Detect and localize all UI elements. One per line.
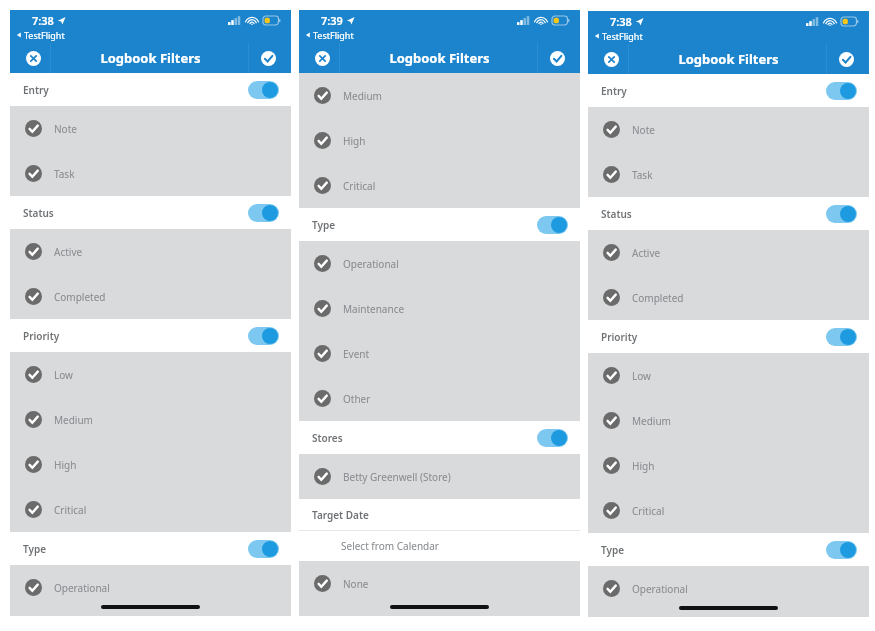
button[interactable]: Entry	[10, 73, 291, 106]
button[interactable]: Type	[299, 208, 580, 241]
button[interactable]: Apply filters	[544, 45, 570, 71]
staticText: TestFlight	[313, 29, 354, 41]
staticText: Operational	[343, 257, 399, 271]
button[interactable]: High	[588, 443, 869, 488]
button[interactable]: Note	[588, 107, 869, 152]
button[interactable]: Toggle section	[826, 82, 857, 100]
staticText: None	[343, 577, 369, 591]
button[interactable]: Toggle section	[537, 429, 568, 447]
staticText: Note	[632, 123, 655, 137]
button[interactable]: Toggle section	[248, 540, 279, 558]
staticText: Medium	[343, 89, 382, 103]
button[interactable]: Event	[299, 331, 580, 376]
staticText: Operational	[54, 581, 110, 595]
staticText: Medium	[632, 414, 671, 428]
button[interactable]: Medium	[588, 398, 869, 443]
button[interactable]: Operational	[299, 241, 580, 286]
button[interactable]: Active	[588, 230, 869, 275]
staticText: Completed	[632, 291, 684, 305]
staticText: Other	[343, 392, 371, 406]
button[interactable]: Maintenance	[299, 286, 580, 331]
staticText: Critical	[343, 179, 376, 193]
button[interactable]: Completed	[588, 275, 869, 320]
staticText: Task	[632, 168, 653, 182]
staticText: Logbook Filters	[100, 49, 201, 67]
staticText: Type	[601, 543, 625, 557]
staticText: Maintenance	[343, 302, 405, 316]
staticText: Type	[23, 542, 47, 556]
button[interactable]: Toggle section	[248, 327, 279, 345]
button[interactable]: Medium	[299, 73, 580, 118]
staticText: Medium	[54, 413, 93, 427]
staticText: Status	[23, 206, 54, 220]
button[interactable]: Toggle section	[826, 541, 857, 559]
button[interactable]: Other	[299, 376, 580, 421]
staticText: Entry	[601, 84, 627, 98]
button[interactable]: Apply filters	[833, 46, 859, 72]
button[interactable]: Toggle section	[248, 81, 279, 99]
staticText: Low	[632, 369, 651, 383]
button[interactable]: Type	[588, 533, 869, 566]
button[interactable]: Operational	[10, 565, 291, 610]
staticText: TestFlight	[602, 30, 643, 42]
staticText: Logbook Filters	[678, 50, 779, 68]
button[interactable]: Close	[598, 46, 624, 72]
staticText: Priority	[601, 330, 638, 344]
button[interactable]: Completed	[10, 274, 291, 319]
button[interactable]: Active	[10, 229, 291, 274]
button[interactable]: Close	[309, 45, 335, 71]
staticText: High	[54, 458, 77, 472]
staticText: Logbook Filters	[389, 49, 490, 67]
staticText: Type	[312, 218, 336, 232]
button[interactable]: Close	[20, 45, 46, 71]
button[interactable]: Task	[588, 152, 869, 197]
staticText: Task	[54, 167, 75, 181]
staticText: Betty Greenwell (Store)	[343, 470, 451, 484]
staticText: 7:38	[32, 13, 54, 28]
staticText: Operational	[632, 582, 688, 596]
button[interactable]: Stores	[299, 421, 580, 454]
button[interactable]: Critical	[588, 488, 869, 533]
button[interactable]: Entry	[588, 74, 869, 107]
button[interactable]: None	[299, 561, 580, 606]
button[interactable]: Betty Greenwell (Store)	[299, 454, 580, 499]
button[interactable]: Medium	[10, 397, 291, 442]
staticText: Critical	[54, 503, 87, 517]
staticText: High	[343, 134, 366, 148]
staticText: Target Date	[312, 508, 369, 522]
button[interactable]: Target Date	[299, 499, 580, 530]
button[interactable]: Low	[10, 352, 291, 397]
button[interactable]: Task	[10, 151, 291, 196]
button[interactable]: Status	[588, 197, 869, 230]
staticText: Select from Calendar	[341, 539, 439, 553]
button[interactable]: Note	[10, 106, 291, 151]
button[interactable]: Type	[10, 532, 291, 565]
staticText: 7:38	[610, 14, 632, 29]
staticText: Completed	[54, 290, 106, 304]
staticText: TestFlight	[24, 29, 65, 41]
button[interactable]: Priority	[10, 319, 291, 352]
staticText: Note	[54, 122, 77, 136]
button[interactable]: Operational	[588, 566, 869, 611]
button[interactable]: High	[299, 118, 580, 163]
staticText: Entry	[23, 83, 49, 97]
button[interactable]: Apply filters	[255, 45, 281, 71]
button[interactable]: Toggle section	[248, 204, 279, 222]
button[interactable]: Toggle section	[537, 216, 568, 234]
button[interactable]: Priority	[588, 320, 869, 353]
staticText: Low	[54, 368, 73, 382]
staticText: Event	[343, 347, 370, 361]
button[interactable]: Critical	[299, 163, 580, 208]
button[interactable]: Select from Calendar	[299, 530, 580, 561]
button[interactable]: Low	[588, 353, 869, 398]
staticText: Critical	[632, 504, 665, 518]
button[interactable]: Toggle section	[826, 328, 857, 346]
button[interactable]: Status	[10, 196, 291, 229]
button[interactable]: High	[10, 442, 291, 487]
staticText: High	[632, 459, 655, 473]
staticText: Active	[632, 246, 661, 260]
staticText: Stores	[312, 431, 343, 445]
button[interactable]: Toggle section	[826, 205, 857, 223]
button[interactable]: Critical	[10, 487, 291, 532]
staticText: Status	[601, 207, 632, 221]
